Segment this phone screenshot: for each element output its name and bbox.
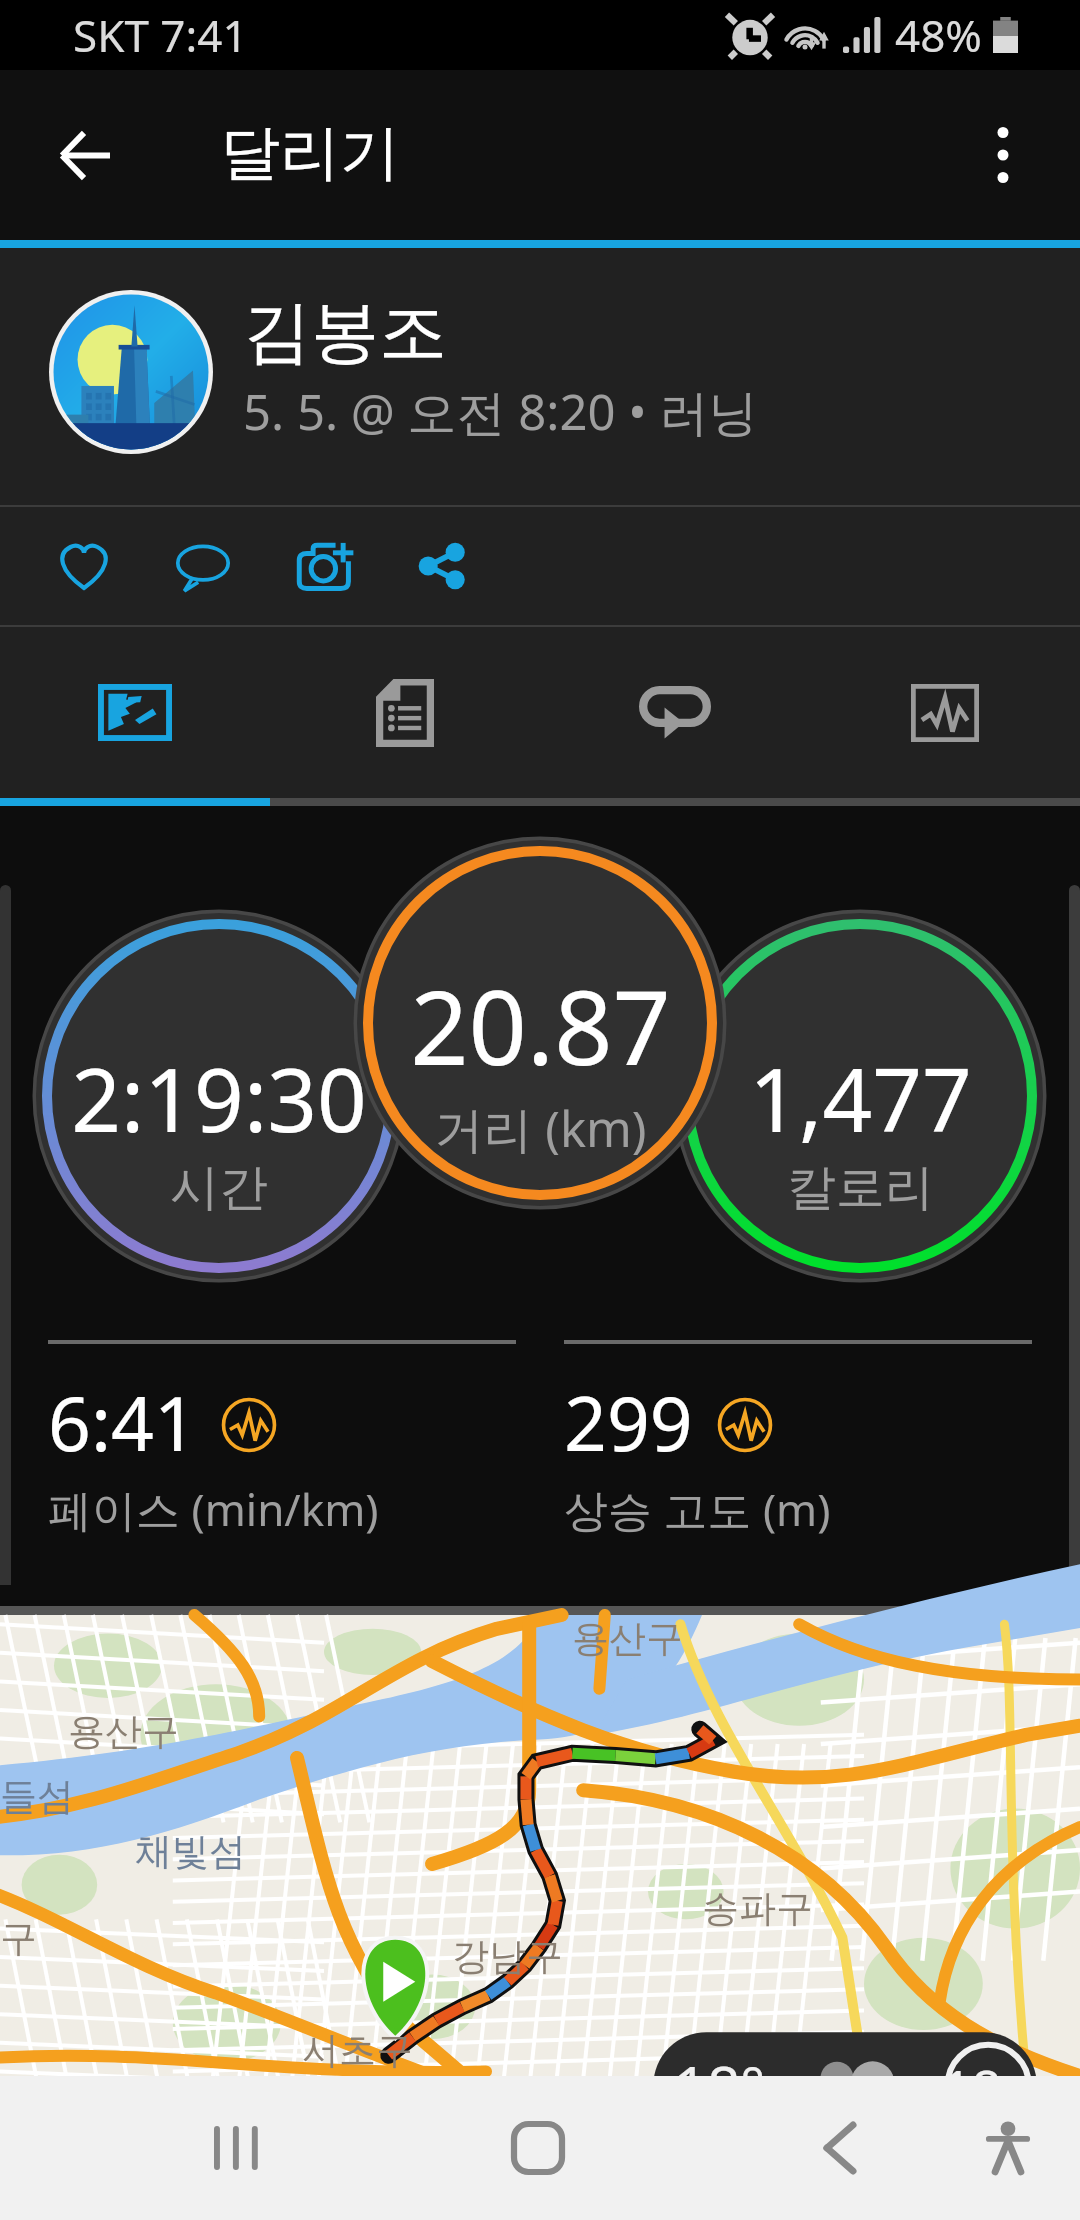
staticText: 페이스 (min/km): [48, 1479, 379, 1539]
staticText: 48%: [895, 5, 982, 65]
staticText: 김봉조: [243, 290, 447, 376]
staticText: 상승 고도 (m): [564, 1479, 831, 1539]
staticText: 채빛섬: [135, 1828, 246, 1875]
staticText: 서초구: [302, 2027, 413, 2074]
button[interactable]: Accessibility: [936, 2076, 1080, 2220]
button[interactable]: More options: [948, 100, 1058, 210]
staticText: 2:19:30: [71, 1039, 367, 1157]
staticText: 구: [0, 1915, 37, 1962]
button[interactable]: Recent apps: [164, 2076, 308, 2220]
button[interactable]: Heart rate: [810, 627, 1080, 798]
staticText: 299: [564, 1371, 693, 1473]
staticText: 18: [942, 2053, 1002, 2124]
staticText: 20.87: [410, 956, 671, 1095]
button[interactable]: Like: [24, 507, 144, 625]
button[interactable]: Comment: [143, 507, 263, 625]
staticText: 달리기: [220, 115, 400, 191]
staticText: 5. 5. @ 오전 8:20 • 러닝: [243, 378, 758, 445]
button[interactable]: Details: [270, 627, 540, 798]
button[interactable]: Laps: [540, 627, 810, 798]
button[interactable]: Map: [0, 627, 270, 798]
button[interactable]: Back: [30, 100, 140, 210]
staticText: 들섬: [0, 1773, 74, 1820]
button[interactable]: Home: [466, 2076, 610, 2220]
staticText: 거리 (km): [434, 1095, 647, 1162]
button[interactable]: Add photo: [265, 507, 385, 625]
staticText: 18°: [674, 2047, 766, 2126]
button[interactable]: 김봉조: [0, 248, 1080, 505]
staticText: 용산구: [572, 1615, 683, 1662]
staticText: 칼로리: [787, 1157, 934, 1219]
staticText: 용산구: [68, 1708, 179, 1755]
staticText: SKT 7:41: [73, 5, 248, 65]
button[interactable]: Back: [768, 2076, 912, 2220]
staticText: 송파구: [702, 1885, 813, 1932]
staticText: 강남구: [452, 1933, 563, 1980]
button[interactable]: Share: [383, 507, 503, 625]
staticText: 6:41: [48, 1371, 197, 1473]
staticText: 시간: [170, 1157, 268, 1219]
staticText: 1,477: [749, 1039, 972, 1157]
